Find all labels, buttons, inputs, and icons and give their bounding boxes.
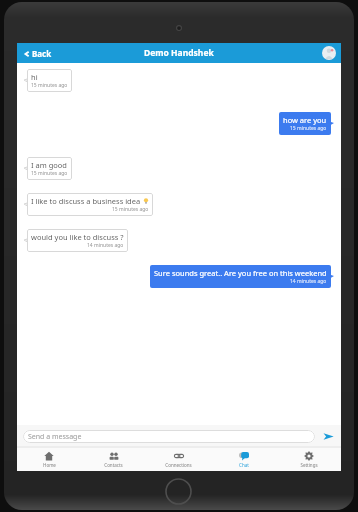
staticText: how are you — [283, 115, 327, 125]
button[interactable]: Settings — [276, 447, 341, 471]
staticText: hi — [31, 72, 38, 82]
staticText: I like to discuss a business idea — [31, 196, 141, 206]
button[interactable]: Home — [17, 447, 81, 471]
staticText: 15 minutes ago — [112, 206, 149, 213]
button[interactable]: Back — [22, 46, 54, 61]
staticText: I am good — [31, 160, 67, 170]
button[interactable]: Profile — [322, 46, 336, 60]
staticText: Sure sounds great.. Are you free on this… — [154, 268, 327, 278]
staticText: Contacts — [104, 462, 123, 468]
staticText: Home — [43, 462, 56, 468]
button[interactable]: would you like to discuss ? — [27, 229, 128, 252]
staticText: 15 minutes ago — [290, 125, 327, 132]
button[interactable]: Sure sounds great.. Are you free on this… — [150, 265, 331, 288]
staticText: Back — [32, 48, 52, 59]
staticText: 14 minutes ago — [87, 242, 124, 249]
staticText: 15 minutes ago — [31, 82, 68, 89]
button[interactable]: Send — [321, 429, 335, 443]
button[interactable]: Contacts — [81, 447, 146, 471]
staticText: 14 minutes ago — [290, 278, 327, 285]
button[interactable]: Send a message — [23, 430, 315, 443]
staticText: Chat — [239, 462, 249, 468]
staticText: 15 minutes ago — [31, 170, 68, 177]
button[interactable]: hi — [27, 69, 72, 92]
button[interactable]: I am good — [27, 157, 72, 180]
staticText: would you like to discuss ? — [31, 232, 124, 242]
staticText: Demo Handshek — [144, 47, 214, 59]
staticText: Settings — [300, 462, 318, 468]
staticText: Send a message — [28, 432, 82, 442]
staticText: Connections — [165, 462, 192, 468]
button[interactable]: how are you — [279, 112, 331, 135]
button[interactable]: I like to discuss a business idea — [27, 193, 153, 216]
button[interactable]: Chat — [211, 447, 276, 471]
button[interactable]: Connections — [146, 447, 211, 471]
